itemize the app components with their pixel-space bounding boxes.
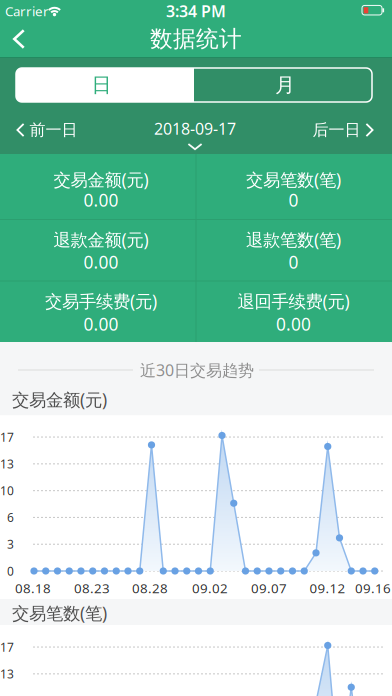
staticText: 后一日	[312, 120, 360, 140]
staticText: 0	[288, 188, 298, 211]
staticText: 08.23	[74, 579, 110, 597]
staticText: 08.28	[132, 579, 168, 597]
staticText: 日	[91, 73, 111, 97]
staticText: 0.00	[83, 312, 118, 335]
staticText: 交易笔数(笔)	[12, 601, 107, 624]
staticText: 0	[288, 250, 298, 273]
staticText: 数据统计	[150, 25, 242, 53]
staticText: 2018-09-17	[154, 118, 236, 139]
staticText: 0	[7, 563, 14, 579]
staticText: 17	[0, 429, 14, 445]
button[interactable]: 前一日	[12, 113, 82, 147]
staticText: 月	[275, 73, 295, 97]
staticText: 近30日交易趋势	[140, 359, 254, 381]
staticText: 13	[0, 456, 14, 472]
staticText: 09.16	[355, 579, 391, 597]
staticText: 6	[7, 509, 14, 525]
button[interactable]: 2018-09-17	[135, 116, 255, 152]
staticText: 交易手续费(元)	[45, 289, 157, 312]
staticText: 3:34 PM	[166, 0, 226, 22]
button[interactable]: 后一日	[308, 113, 378, 147]
staticText: 0.00	[83, 188, 118, 211]
staticText: 退回手续费(元)	[237, 289, 349, 312]
staticText: 0.00	[83, 250, 118, 273]
staticText: 13	[0, 666, 14, 682]
staticText: 交易金额(元)	[12, 388, 107, 411]
staticText: 17	[0, 639, 14, 655]
staticText: 08.18	[15, 579, 51, 597]
button[interactable]	[2, 19, 36, 59]
staticText: 退款笔数(笔)	[246, 228, 341, 251]
staticText: 交易笔数(笔)	[246, 168, 341, 191]
staticText: 09.12	[309, 579, 345, 597]
staticText: 09.07	[251, 579, 287, 597]
staticText: 3	[7, 536, 14, 552]
button[interactable]: 日	[16, 68, 194, 102]
staticText: 09.02	[192, 579, 228, 597]
staticText: 前一日	[29, 120, 77, 140]
staticText: Carrier	[5, 2, 49, 20]
staticText: 退款金额(元)	[53, 228, 148, 251]
button[interactable]: 月	[194, 68, 372, 102]
staticText: 0.00	[276, 312, 311, 335]
staticText: 交易金额(元)	[53, 168, 148, 191]
staticText: 10	[0, 483, 14, 498]
